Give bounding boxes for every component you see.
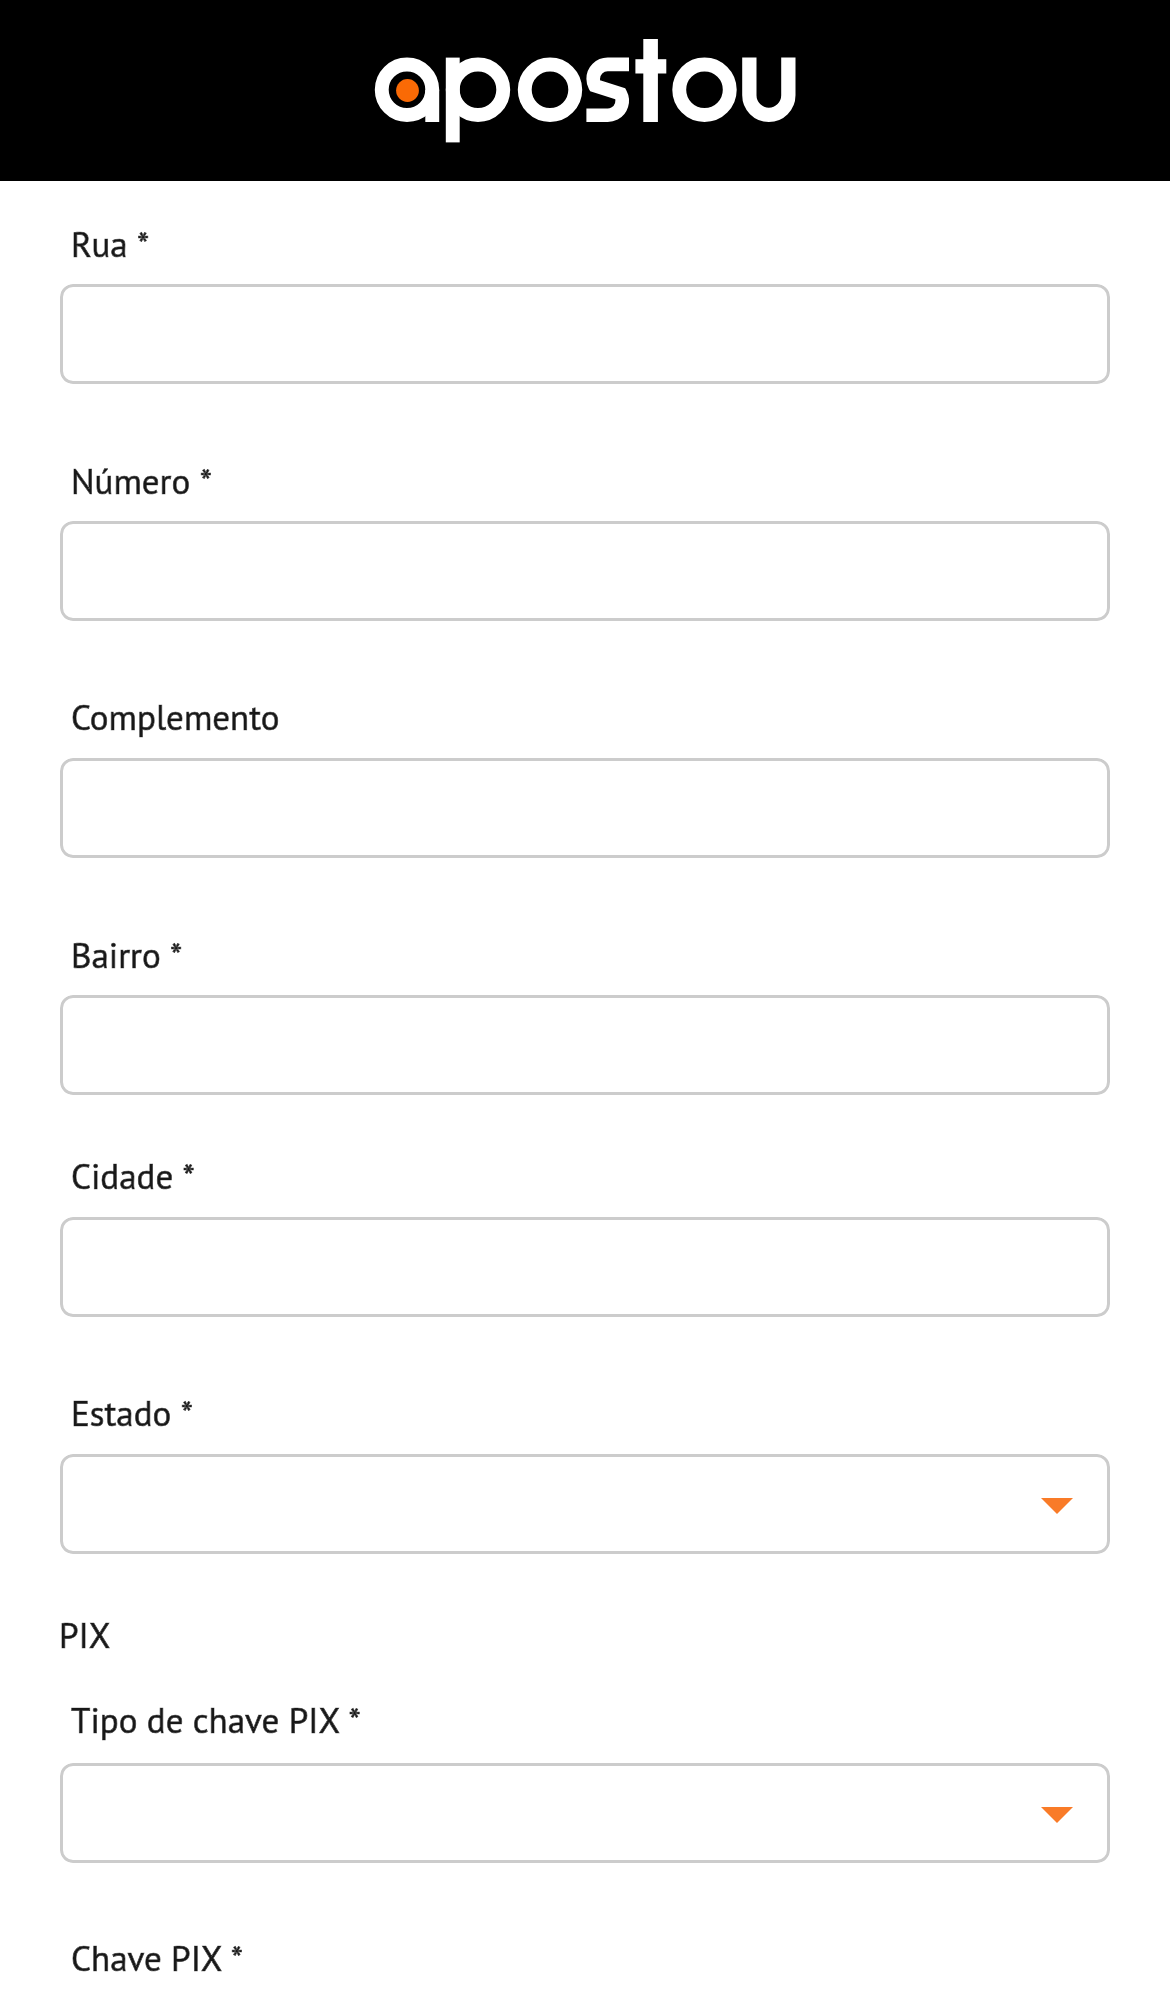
staticText: PIX xyxy=(59,1612,111,1657)
staticText: Chave PIX * xyxy=(71,1935,244,1980)
staticText: Rua * xyxy=(71,221,150,266)
staticText: Bairro * xyxy=(71,932,183,977)
staticText: Número * xyxy=(71,458,212,503)
button[interactable]: Rua xyxy=(60,284,1110,384)
other: apostou xyxy=(0,0,1170,181)
button[interactable]: Cidade xyxy=(60,1217,1110,1317)
staticText: Bairro * xyxy=(71,932,183,977)
staticText: Complemento xyxy=(71,694,280,739)
staticText: Estado * xyxy=(71,1390,193,1435)
button[interactable]: Número xyxy=(60,521,1110,621)
staticText: Tipo de chave PIX * xyxy=(71,1697,361,1742)
button[interactable]: Tipo de chave PIX xyxy=(60,1763,1110,1863)
button[interactable]: Bairro xyxy=(60,995,1110,1095)
staticText: Cidade * xyxy=(71,1153,195,1198)
staticText: Estado * xyxy=(71,1390,193,1435)
button[interactable]: Estado xyxy=(60,1454,1110,1554)
staticText: Rua * xyxy=(71,221,150,266)
staticText: Cidade * xyxy=(71,1153,195,1198)
staticText: PIX xyxy=(59,1612,111,1657)
button[interactable]: Complemento xyxy=(60,758,1110,858)
staticText: Complemento xyxy=(71,694,280,739)
staticText: Número * xyxy=(71,458,212,503)
staticText: Chave PIX * xyxy=(71,1935,244,1980)
staticText: Tipo de chave PIX * xyxy=(71,1697,361,1742)
